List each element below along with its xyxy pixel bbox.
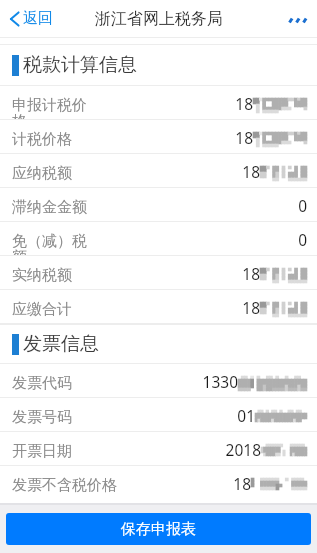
staticText: 滞纳金金额: [12, 198, 87, 217]
staticText: 18: [242, 161, 260, 182]
staticText: 计税价格: [12, 130, 72, 149]
button[interactable]: 开票日期: [0, 432, 317, 465]
button[interactable]: More options: [287, 7, 317, 31]
staticText: 申报计税价格: [12, 96, 92, 119]
staticText: 返回: [23, 9, 53, 28]
button[interactable]: 保存申报表: [6, 513, 311, 545]
staticText: 浙江省网上税务局: [95, 9, 223, 29]
button[interactable]: 申报计税价格: [0, 86, 317, 119]
button[interactable]: 发票号码: [0, 398, 317, 431]
button[interactable]: 发票不含税价格: [0, 466, 317, 499]
staticText: 开票日期: [12, 442, 72, 461]
staticText: 0: [298, 229, 307, 250]
staticText: 18: [235, 127, 253, 148]
staticText: 应缴合计: [12, 300, 72, 319]
staticText: 01: [237, 405, 255, 426]
staticText: 发票代码: [12, 374, 72, 393]
button[interactable]: Back: [0, 9, 61, 28]
staticText: 税款计算信息: [23, 53, 137, 77]
staticText: 发票信息: [23, 332, 99, 356]
staticText: 18: [233, 473, 251, 494]
button[interactable]: 应纳税额: [0, 154, 317, 187]
staticText: 18: [242, 297, 260, 318]
staticText: 实纳税额: [12, 266, 72, 285]
staticText: 18: [242, 263, 260, 284]
button[interactable]: 实纳税额: [0, 256, 317, 289]
staticText: 发票不含税价格: [12, 476, 117, 495]
staticText: 0: [298, 195, 307, 216]
staticText: 保存申报表: [121, 520, 196, 539]
staticText: 1330: [202, 371, 238, 392]
button[interactable]: 免（减）税额: [0, 222, 317, 255]
button[interactable]: 应缴合计: [0, 290, 317, 323]
staticText: 2018: [225, 439, 261, 460]
staticText: 免（减）税额: [12, 232, 92, 255]
staticText: 18: [235, 93, 253, 114]
button[interactable]: 计税价格: [0, 120, 317, 153]
staticText: 应纳税额: [12, 164, 72, 183]
button[interactable]: 滞纳金金额: [0, 188, 317, 221]
button[interactable]: 发票代码: [0, 364, 317, 397]
staticText: 发票号码: [12, 408, 72, 427]
